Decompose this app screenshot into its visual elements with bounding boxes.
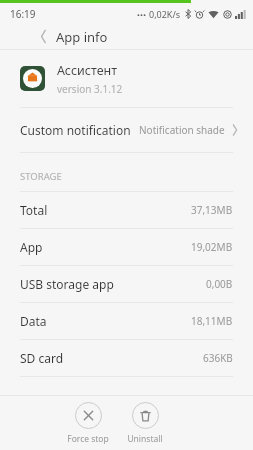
other: Uninstall (132, 402, 159, 429)
button[interactable]: USB storage app (0, 266, 253, 302)
staticText: 636KB (203, 351, 233, 365)
staticText: STORAGE (20, 170, 62, 183)
staticText: 19,02MB (191, 240, 233, 254)
button[interactable]: Total (0, 192, 253, 228)
staticText: Notification shade (139, 123, 225, 137)
button[interactable]: Data (0, 303, 253, 339)
button[interactable]: Ассистент (0, 50, 253, 107)
staticText: Total (20, 202, 48, 218)
button[interactable]: Uninstall (123, 402, 167, 445)
staticText: version 3.1.12 (57, 82, 123, 96)
staticText: Ассистент (57, 62, 118, 79)
staticText: Data (20, 313, 47, 329)
button[interactable]: SD card (0, 340, 253, 376)
button[interactable]: App (0, 229, 253, 265)
staticText: 0,02K/s (149, 8, 181, 20)
staticText: App info (56, 28, 108, 46)
staticText: SD card (20, 350, 64, 366)
staticText: Force stop (67, 433, 109, 445)
staticText: 0,00B (206, 277, 233, 291)
button[interactable]: Custom notification (0, 108, 253, 152)
staticText: 37,13MB (191, 203, 233, 217)
staticText: Uninstall (127, 433, 163, 445)
button[interactable]: Force stop (63, 402, 113, 445)
button[interactable]: Back (0, 24, 253, 49)
staticText: App (20, 239, 43, 255)
staticText: 16:19 (10, 7, 36, 21)
staticText: 18,11MB (191, 314, 233, 328)
other: Back (28, 24, 56, 49)
staticText: USB storage app (20, 276, 114, 292)
other: Force stop (75, 402, 102, 429)
staticText: Custom notification (20, 122, 131, 138)
